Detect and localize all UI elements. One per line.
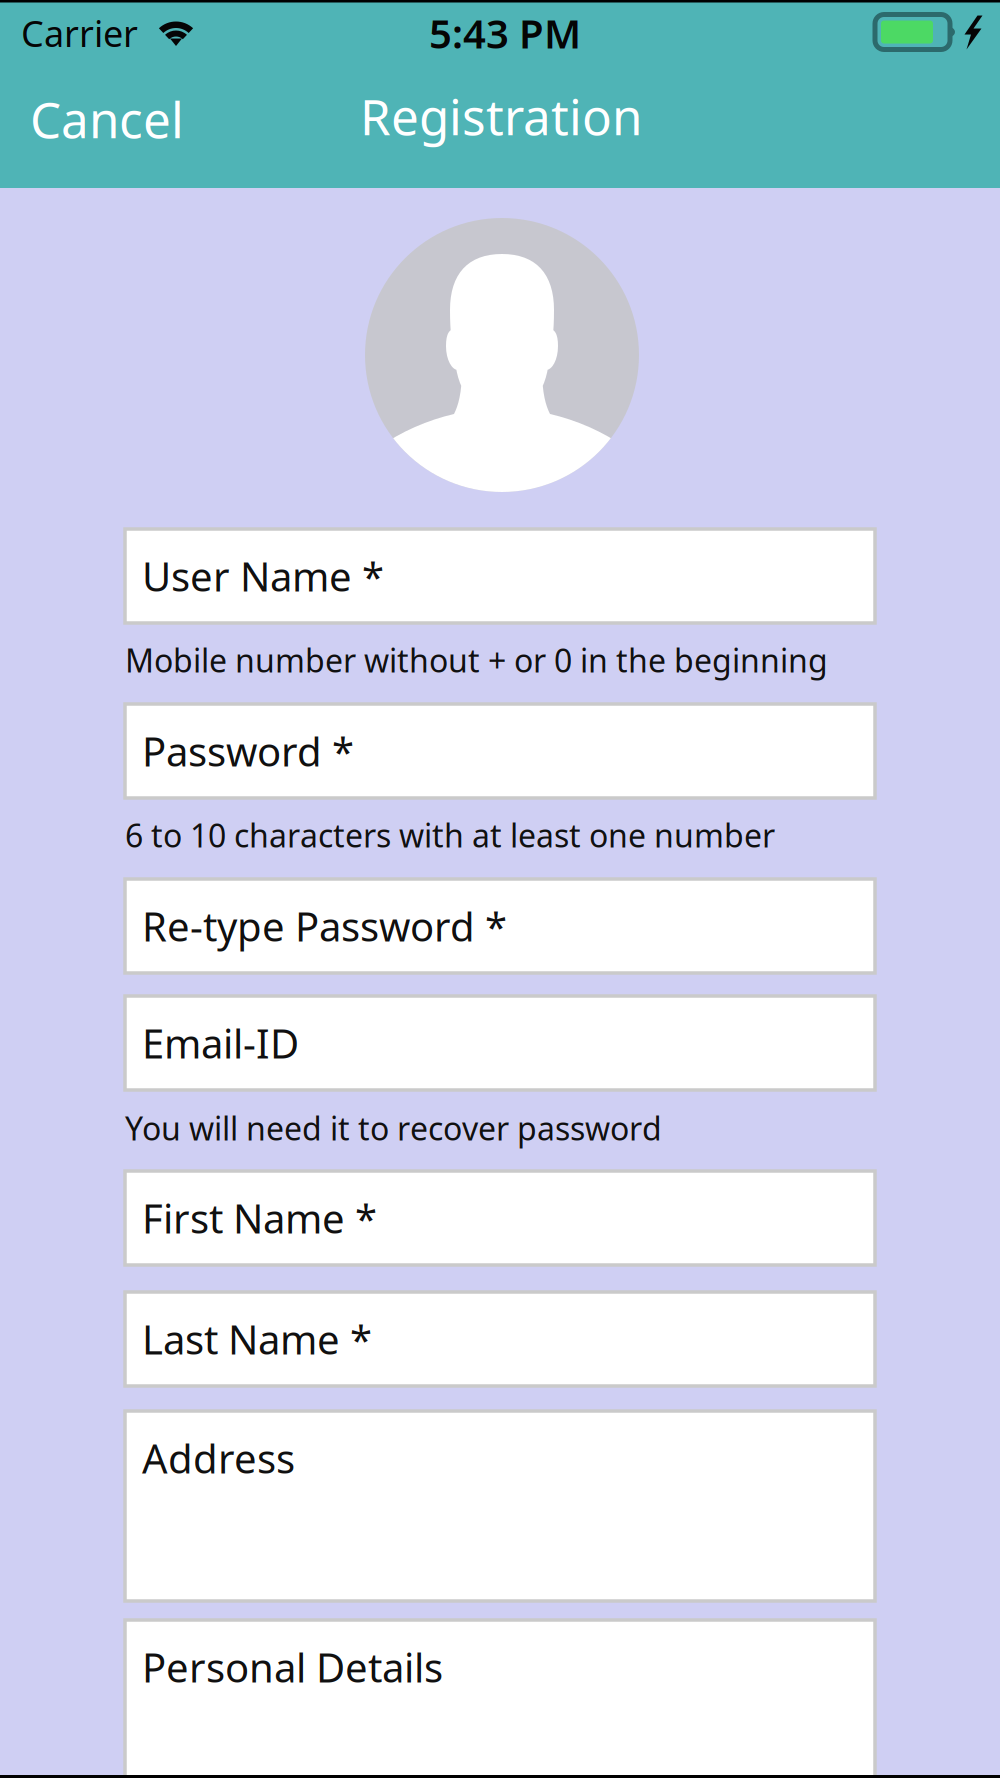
button[interactable]: Email-ID: [125, 996, 875, 1090]
staticText: Carrier: [21, 9, 138, 57]
button[interactable]: Password *: [125, 704, 875, 798]
button[interactable]: First Name *: [125, 1171, 875, 1265]
staticText: Email-ID: [142, 1016, 299, 1069]
staticText: Last Name *: [142, 1312, 372, 1365]
button[interactable]: Cancel: [0, 71, 230, 167]
staticText: First Name *: [142, 1191, 377, 1244]
button[interactable]: Profile photo: [365, 218, 639, 492]
staticText: 5:43 PM: [429, 6, 581, 59]
staticText: Address: [142, 1431, 295, 1484]
button[interactable]: Address: [125, 1411, 875, 1601]
staticText: User Name *: [142, 549, 384, 602]
button[interactable]: User Name *: [125, 529, 875, 623]
button[interactable]: Last Name *: [125, 1292, 875, 1386]
staticText: Personal Details: [142, 1640, 443, 1693]
staticText: 6 to 10 characters with at least one num…: [125, 814, 775, 856]
button[interactable]: Personal Details: [125, 1620, 875, 1778]
staticText: You will need it to recover password: [125, 1107, 662, 1149]
staticText: Re-type Password *: [142, 899, 507, 952]
staticText: Cancel: [30, 86, 184, 152]
staticText: Registration: [360, 83, 642, 149]
button[interactable]: Re-type Password *: [125, 879, 875, 973]
staticText: Mobile number without + or 0 in the begi…: [125, 639, 828, 681]
staticText: Password *: [142, 724, 354, 777]
